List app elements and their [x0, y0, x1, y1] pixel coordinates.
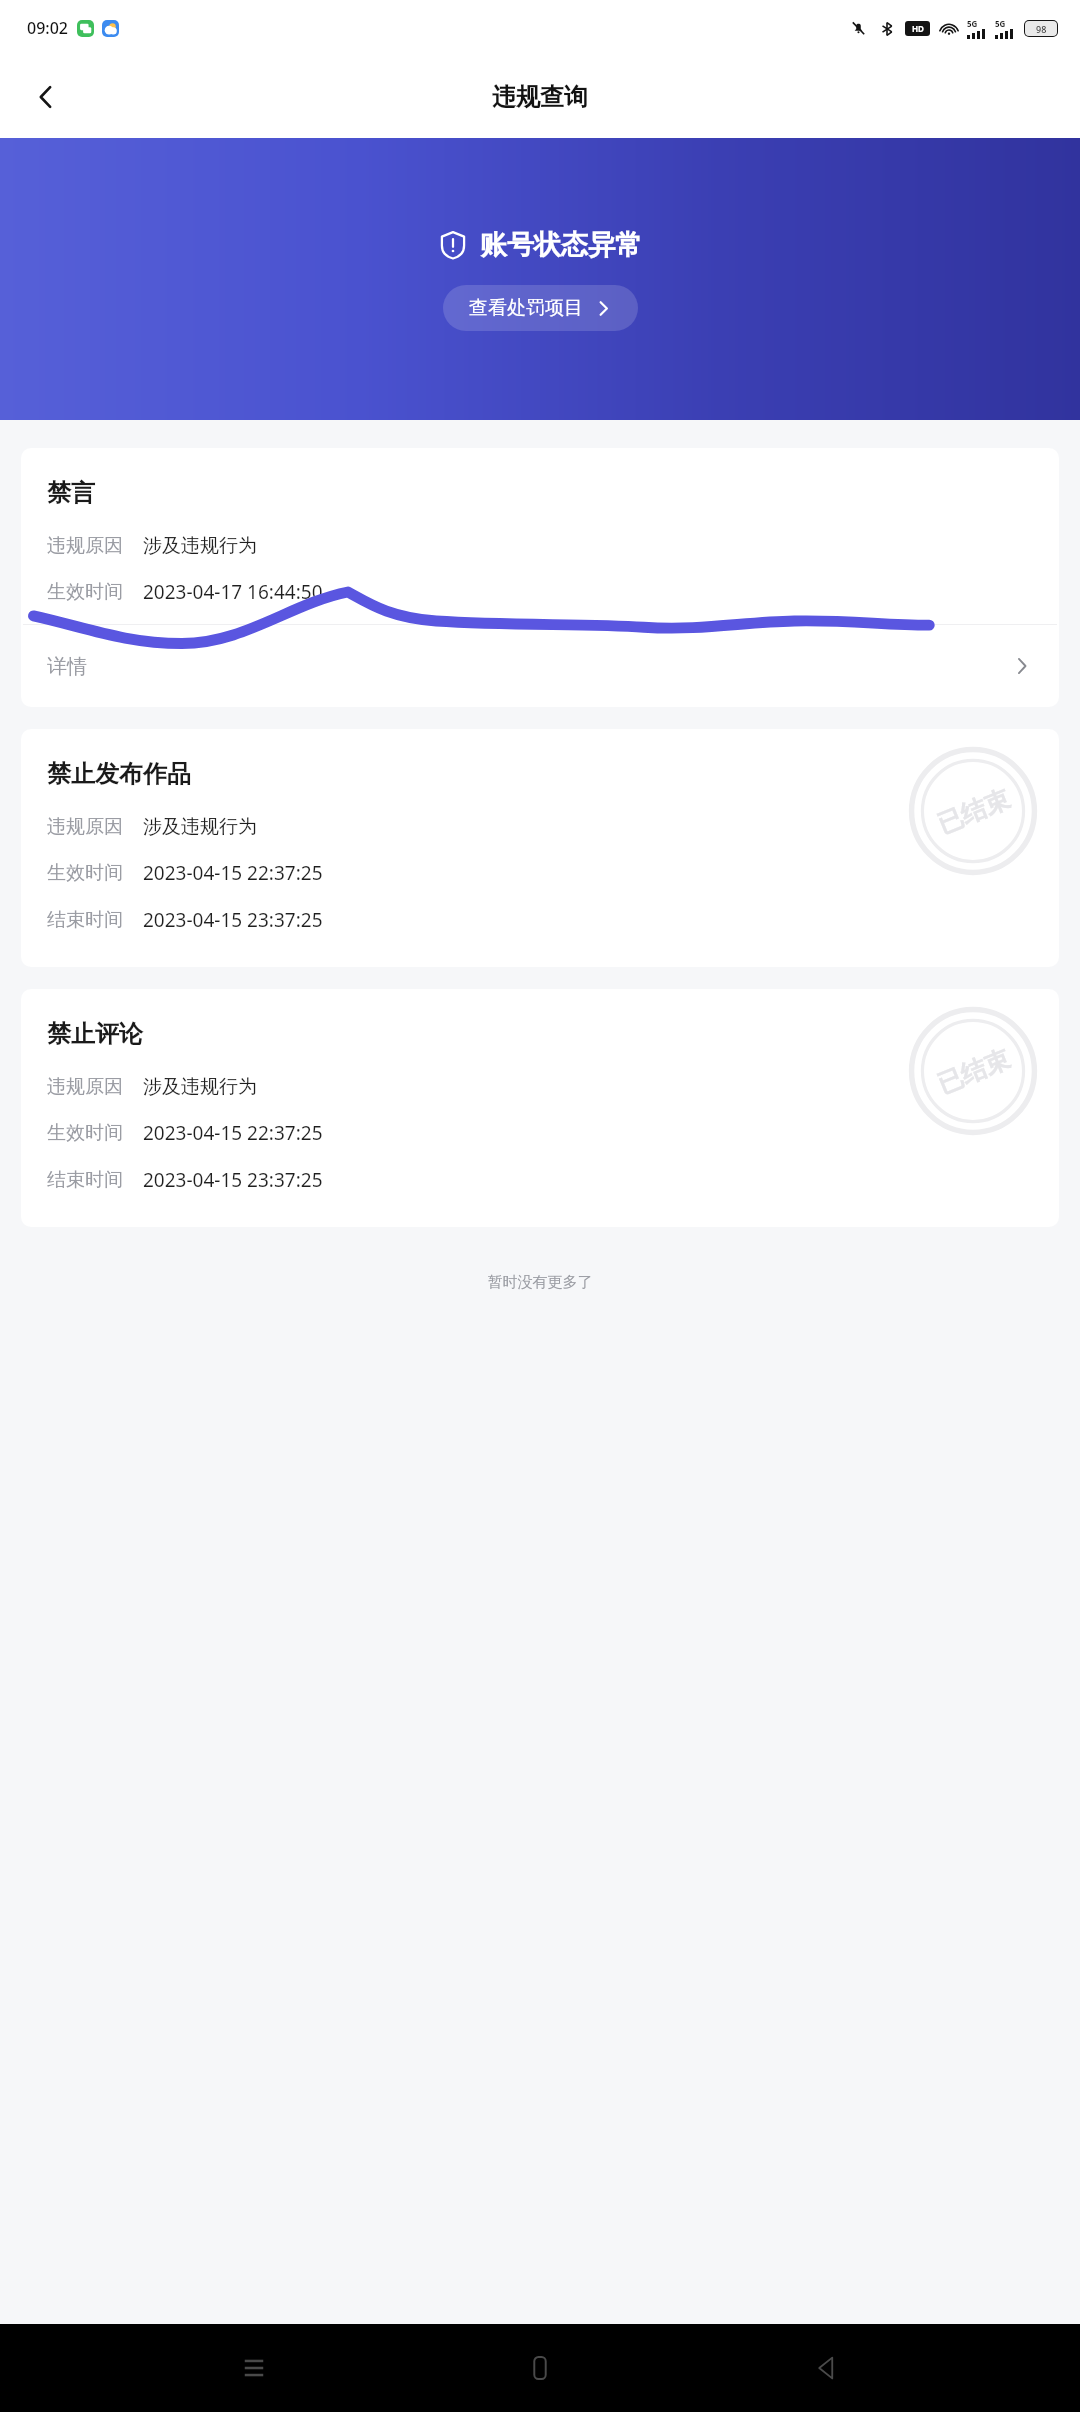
button[interactable]: Recents — [222, 2336, 286, 2400]
button[interactable]: 详情 — [21, 625, 1059, 707]
staticText: 生效时间 — [47, 580, 123, 604]
staticText: 5G — [995, 18, 1006, 29]
staticText: 违规原因 — [47, 534, 123, 558]
staticText: 已结束 — [933, 783, 1014, 840]
staticText: 涉及违规行为 — [143, 1075, 257, 1099]
staticText: 2023-04-15 23:37:25 — [143, 1167, 323, 1193]
staticText: 2023-04-15 22:37:25 — [143, 1120, 323, 1146]
staticText: 09:02 — [27, 17, 68, 39]
staticText: 禁言 — [47, 478, 95, 508]
staticText: 生效时间 — [47, 861, 123, 885]
staticText: 详情 — [47, 654, 87, 679]
button[interactable]: Back — [794, 2336, 858, 2400]
staticText: 已结束 — [933, 1043, 1014, 1100]
staticText: HD — [912, 23, 924, 34]
staticText: 2023-04-15 22:37:25 — [143, 860, 323, 886]
staticText: 违规原因 — [47, 1075, 123, 1099]
staticText: 查看处罚项目 — [469, 296, 583, 320]
button[interactable]: 查看处罚项目 — [443, 285, 638, 331]
staticText: 生效时间 — [47, 1121, 123, 1145]
staticText: 结束时间 — [47, 1168, 123, 1192]
button[interactable]: 已结束 — [21, 989, 1059, 1227]
staticText: 禁止发布作品 — [47, 759, 191, 789]
button[interactable]: 已结束 — [21, 729, 1059, 967]
staticText: 2023-04-15 23:37:25 — [143, 907, 323, 933]
staticText: 涉及违规行为 — [143, 534, 257, 558]
staticText: 涉及违规行为 — [143, 815, 257, 839]
staticText: 违规原因 — [47, 815, 123, 839]
button[interactable]: Back — [18, 69, 74, 125]
staticText: 5G — [967, 18, 978, 29]
staticText: 禁止评论 — [47, 1019, 143, 1049]
staticText: 98 — [1036, 23, 1047, 35]
staticText: 暂时没有更多了 — [0, 1273, 1080, 1292]
staticText: 账号状态异常 — [480, 228, 642, 262]
staticText: 违规查询 — [492, 82, 588, 112]
staticText: 结束时间 — [47, 908, 123, 932]
staticText: 2023-04-17 16:44:50 — [143, 579, 323, 605]
button[interactable]: Home — [508, 2336, 572, 2400]
